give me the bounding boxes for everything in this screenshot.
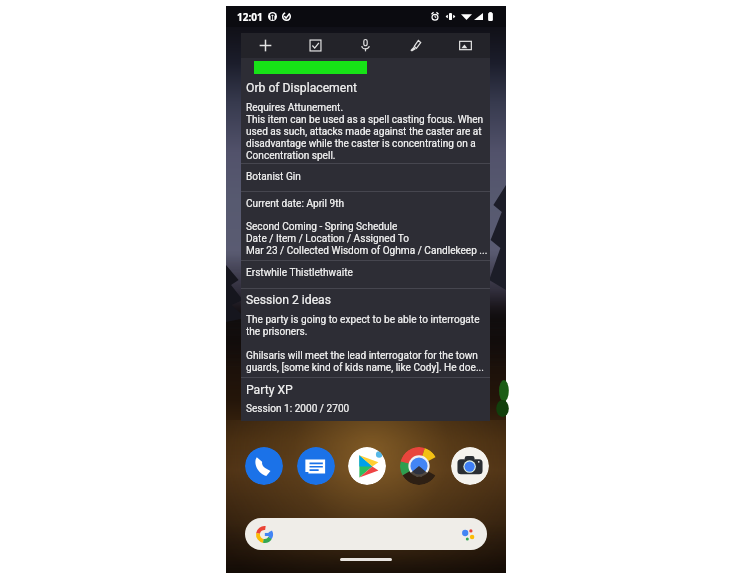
button[interactable]: Requires Attunement. This item can be us… <box>241 102 490 162</box>
button[interactable]: Play Store <box>348 447 386 485</box>
button[interactable]: Messages <box>297 447 335 485</box>
button[interactable]: Botanist Gin <box>241 171 490 183</box>
button[interactable]: Second Coming - Spring Schedule Date / I… <box>241 221 490 257</box>
staticText: Session 2 ideas <box>246 293 332 307</box>
staticText: Ghilsaris will meet the lead interrogato… <box>246 350 488 374</box>
button[interactable]: New checklist <box>290 33 340 58</box>
staticText: Session 1: 2000 / 2700 <box>246 403 350 415</box>
button[interactable]: Current date: April 9th <box>241 198 490 210</box>
staticText: Current date: April 9th <box>246 198 345 210</box>
staticText: The party is going to expect to be able … <box>246 314 488 338</box>
staticText: Second Coming - Spring Schedule Date / I… <box>246 221 488 257</box>
staticText: Party XP <box>246 383 293 397</box>
button[interactable]: Orb of Displacement <box>241 81 490 95</box>
button[interactable]: Add note <box>241 33 290 58</box>
button[interactable]: Party XP <box>241 383 490 397</box>
button[interactable]: The party is going to expect to be able … <box>241 314 490 338</box>
button[interactable]: Drawing <box>390 33 440 58</box>
button[interactable]: Ghilsaris will meet the lead interrogato… <box>241 350 490 374</box>
button[interactable]: Session 1: 2000 / 2700 <box>241 403 490 415</box>
staticText: Orb of Displacement <box>246 81 357 95</box>
staticText: Requires Attunement. This item can be us… <box>246 102 488 162</box>
button[interactable]: Add image <box>440 33 490 58</box>
button[interactable]: Voice note <box>340 33 390 58</box>
staticText: Botanist Gin <box>246 171 301 183</box>
button[interactable]: Chrome <box>400 447 438 485</box>
button[interactable]: Phone <box>245 447 283 485</box>
button[interactable]: Google search <box>245 518 487 550</box>
button[interactable]: Session 2 ideas <box>241 293 490 307</box>
button[interactable]: Erstwhile Thistlethwaite <box>241 267 490 279</box>
staticText: 12:01 <box>237 10 263 24</box>
button[interactable]: Camera <box>451 447 489 485</box>
staticText: Erstwhile Thistlethwaite <box>246 267 353 279</box>
